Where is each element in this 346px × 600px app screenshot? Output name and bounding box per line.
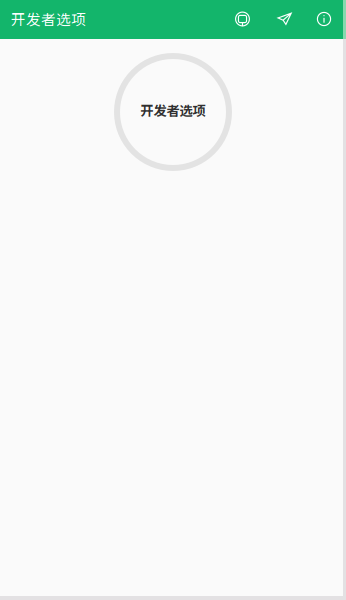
- button[interactable]: 关于: [302, 0, 342, 39]
- button[interactable]: 客服: [222, 0, 262, 39]
- button[interactable]: 分享: [262, 0, 302, 39]
- staticText: 开发者选项: [11, 8, 86, 29]
- staticText: 开发者选项: [140, 100, 205, 120]
